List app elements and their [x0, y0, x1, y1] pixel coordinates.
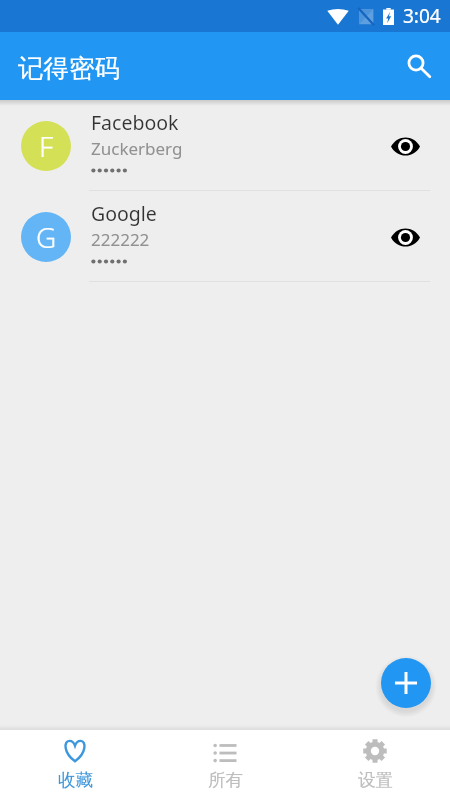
- button[interactable]: Search: [399, 46, 439, 86]
- staticText: F: [39, 127, 54, 165]
- staticText: 记得密码: [18, 52, 120, 84]
- button[interactable]: 设置: [300, 730, 450, 800]
- button[interactable]: Add password: [381, 658, 431, 708]
- staticText: 3:04: [403, 3, 441, 29]
- button[interactable]: F: [0, 100, 450, 191]
- button[interactable]: Show password: [385, 217, 425, 257]
- staticText: Google: [91, 200, 157, 227]
- staticText: Facebook: [91, 109, 179, 136]
- staticText: 收藏: [58, 769, 93, 791]
- button[interactable]: Show password: [385, 126, 425, 166]
- button[interactable]: 所有: [150, 730, 300, 800]
- button[interactable]: 收藏: [0, 730, 150, 800]
- button[interactable]: G: [0, 191, 450, 282]
- staticText: 所有: [208, 769, 243, 791]
- staticText: G: [36, 218, 57, 256]
- staticText: 222222: [91, 228, 150, 251]
- staticText: 设置: [358, 769, 393, 791]
- staticText: Zuckerberg: [91, 137, 183, 160]
